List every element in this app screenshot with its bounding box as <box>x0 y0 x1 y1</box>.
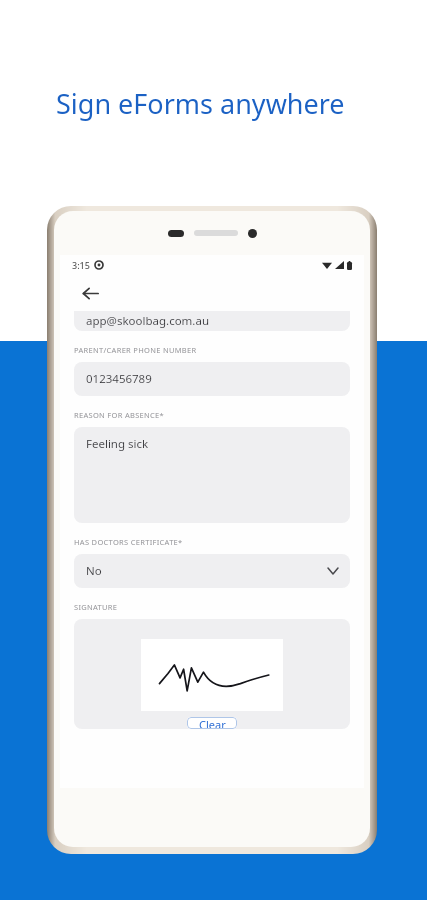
button[interactable]: Signature pad <box>141 639 283 711</box>
button[interactable]: Feeling sick <box>74 427 350 523</box>
staticText: PARENT/CARER PHONE NUMBER <box>74 345 197 355</box>
staticText: REASON FOR ABSENCE* <box>74 410 165 420</box>
staticText: No <box>86 563 102 579</box>
button[interactable]: 0123456789 <box>74 362 350 396</box>
staticText: 0123456789 <box>86 371 152 387</box>
button[interactable]: Clear <box>187 717 237 729</box>
staticText: 3:15 <box>72 259 90 271</box>
button[interactable]: Back <box>72 275 108 311</box>
staticText: Clear <box>199 717 226 729</box>
staticText: Feeling sick <box>86 436 149 452</box>
button[interactable]: app@skoolbag.com.au <box>74 311 350 331</box>
button[interactable]: No <box>74 554 350 588</box>
staticText: HAS DOCTORS CERTIFICATE* <box>74 537 183 547</box>
staticText: Sign eForms anywhere <box>56 85 345 122</box>
staticText: app@skoolbag.com.au <box>86 313 210 329</box>
staticText: SIGNATURE <box>74 602 118 612</box>
